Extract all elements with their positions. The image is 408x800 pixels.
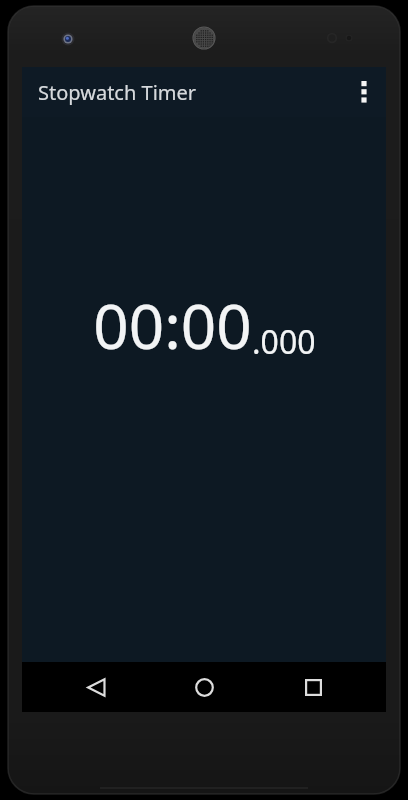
button[interactable]: More options bbox=[342, 67, 386, 117]
button[interactable]: Home bbox=[169, 662, 239, 712]
button[interactable]: 00:00 bbox=[22, 117, 386, 662]
staticText: Stopwatch Timer bbox=[38, 79, 197, 106]
button[interactable]: Back bbox=[61, 662, 131, 712]
staticText: .000 bbox=[252, 320, 316, 364]
button[interactable]: Recent apps bbox=[278, 662, 348, 712]
staticText: 00:00 bbox=[93, 283, 252, 367]
